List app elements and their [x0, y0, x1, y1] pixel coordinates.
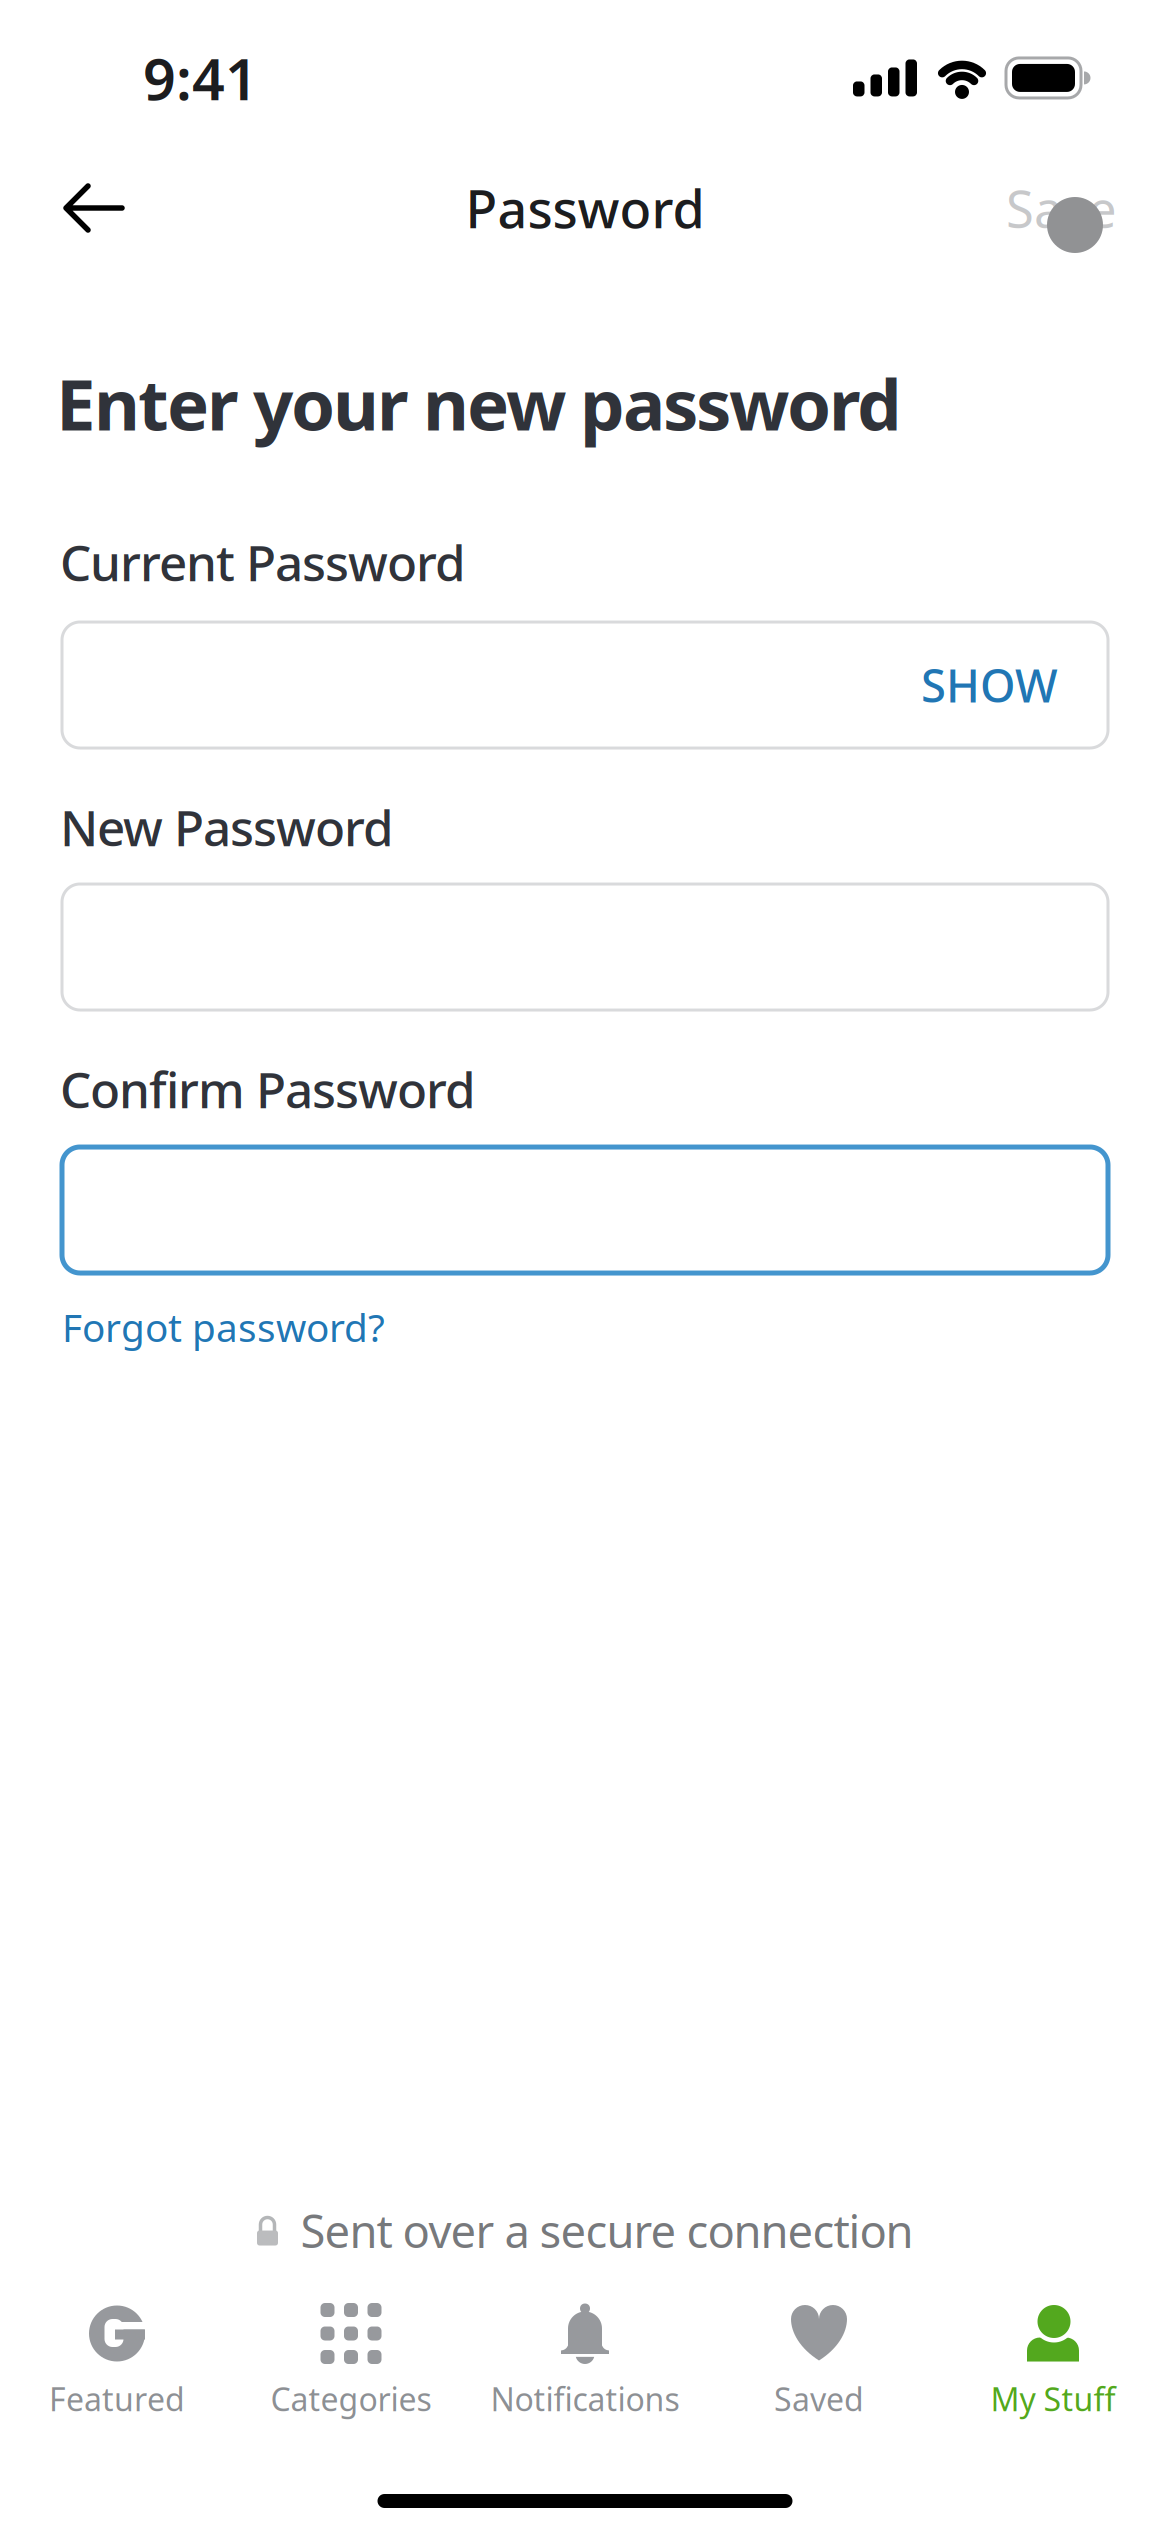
staticText: Current Password — [60, 529, 466, 595]
button[interactable]: Notifications — [468, 2304, 702, 2420]
button[interactable]: Show password — [921, 655, 1058, 715]
staticText: 9:41 — [143, 40, 258, 116]
button[interactable]: Featured — [0, 2304, 234, 2420]
staticText: Featured — [49, 2377, 185, 2420]
button[interactable]: Categories — [234, 2304, 468, 2420]
staticText: My Stuff — [990, 2377, 1115, 2420]
staticText: Enter your new password — [56, 356, 902, 450]
button[interactable]: Saved — [702, 2304, 936, 2420]
staticText: Categories — [270, 2377, 431, 2420]
button[interactable]: Save — [1006, 174, 1117, 242]
staticText: Save — [1006, 174, 1117, 242]
staticText: Saved — [774, 2377, 864, 2420]
staticText: Sent over a secure connection — [300, 2200, 913, 2261]
staticText: Notifications — [490, 2377, 679, 2420]
secureTextField[interactable]: Current Password — [102, 670, 1068, 700]
staticText: Forgot password? — [62, 1301, 385, 1353]
staticText: Password — [465, 173, 704, 243]
button[interactable]: My Stuff — [936, 2304, 1170, 2420]
button[interactable]: Back — [38, 153, 148, 263]
staticText: SHOW — [921, 655, 1058, 715]
staticText: New Password — [60, 794, 394, 860]
staticText: Confirm Password — [60, 1056, 476, 1122]
button[interactable]: Forgot password? — [62, 1299, 385, 1355]
